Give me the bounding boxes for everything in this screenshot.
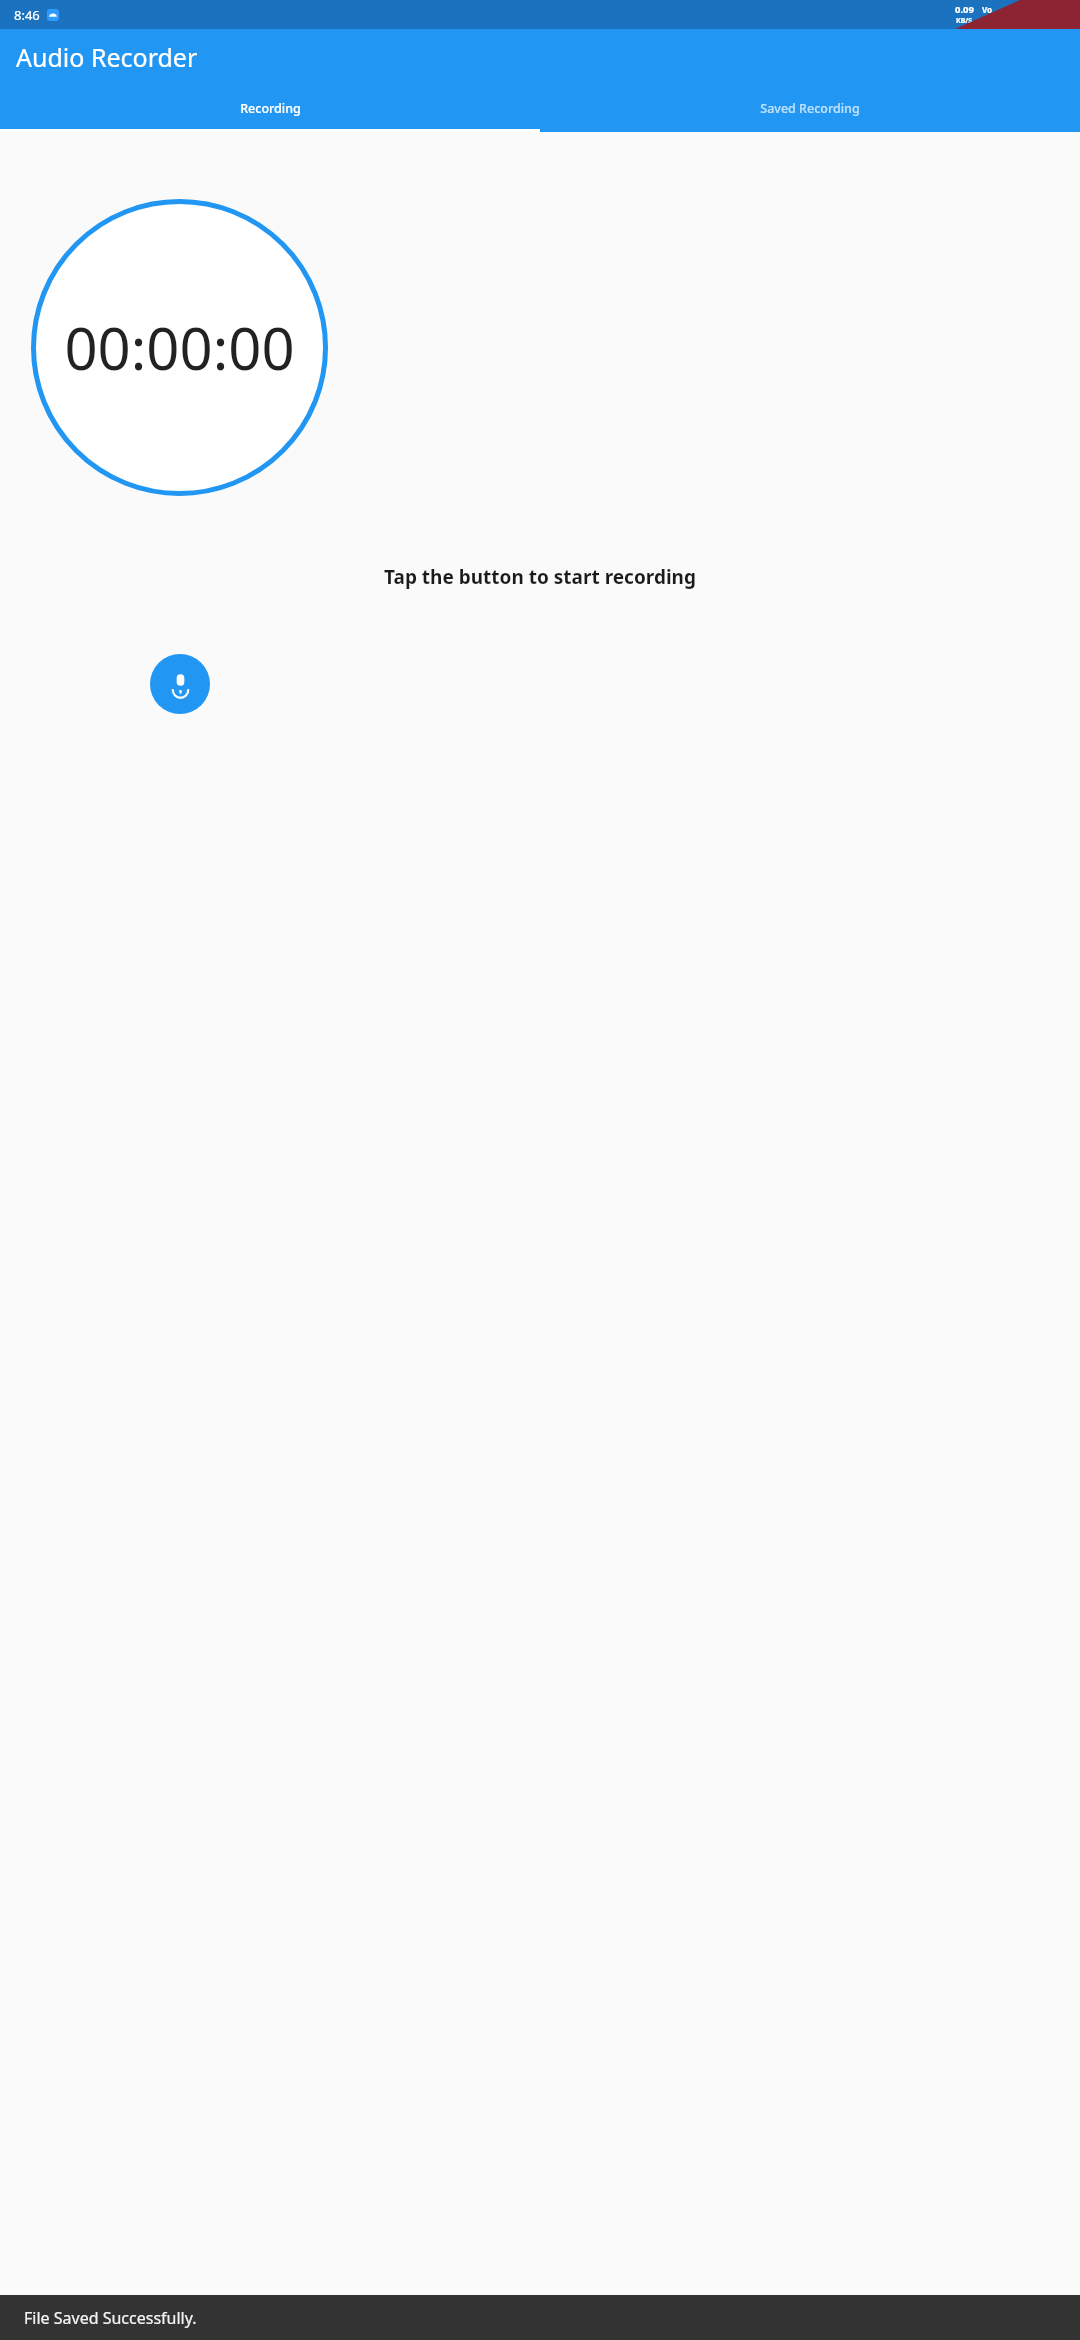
staticText: Tap the button to start recording bbox=[0, 564, 1080, 590]
staticText: 00:00:00 bbox=[64, 308, 295, 387]
staticText: 0.09 bbox=[955, 3, 974, 16]
staticText: Saved Recording bbox=[760, 100, 860, 117]
button[interactable]: Recording bbox=[0, 85, 540, 132]
staticText: Audio Recorder bbox=[16, 40, 198, 74]
staticText: LTE bbox=[980, 15, 994, 26]
staticText: Recording bbox=[240, 100, 301, 117]
staticText: File Saved Successfully. bbox=[24, 2307, 197, 2329]
staticText: 8:46 bbox=[14, 6, 40, 24]
staticText: KB/S bbox=[956, 16, 973, 26]
button[interactable]: Saved Recording bbox=[540, 85, 1080, 132]
button[interactable]: Start recording bbox=[150, 654, 210, 714]
staticText: Vo bbox=[982, 4, 993, 15]
